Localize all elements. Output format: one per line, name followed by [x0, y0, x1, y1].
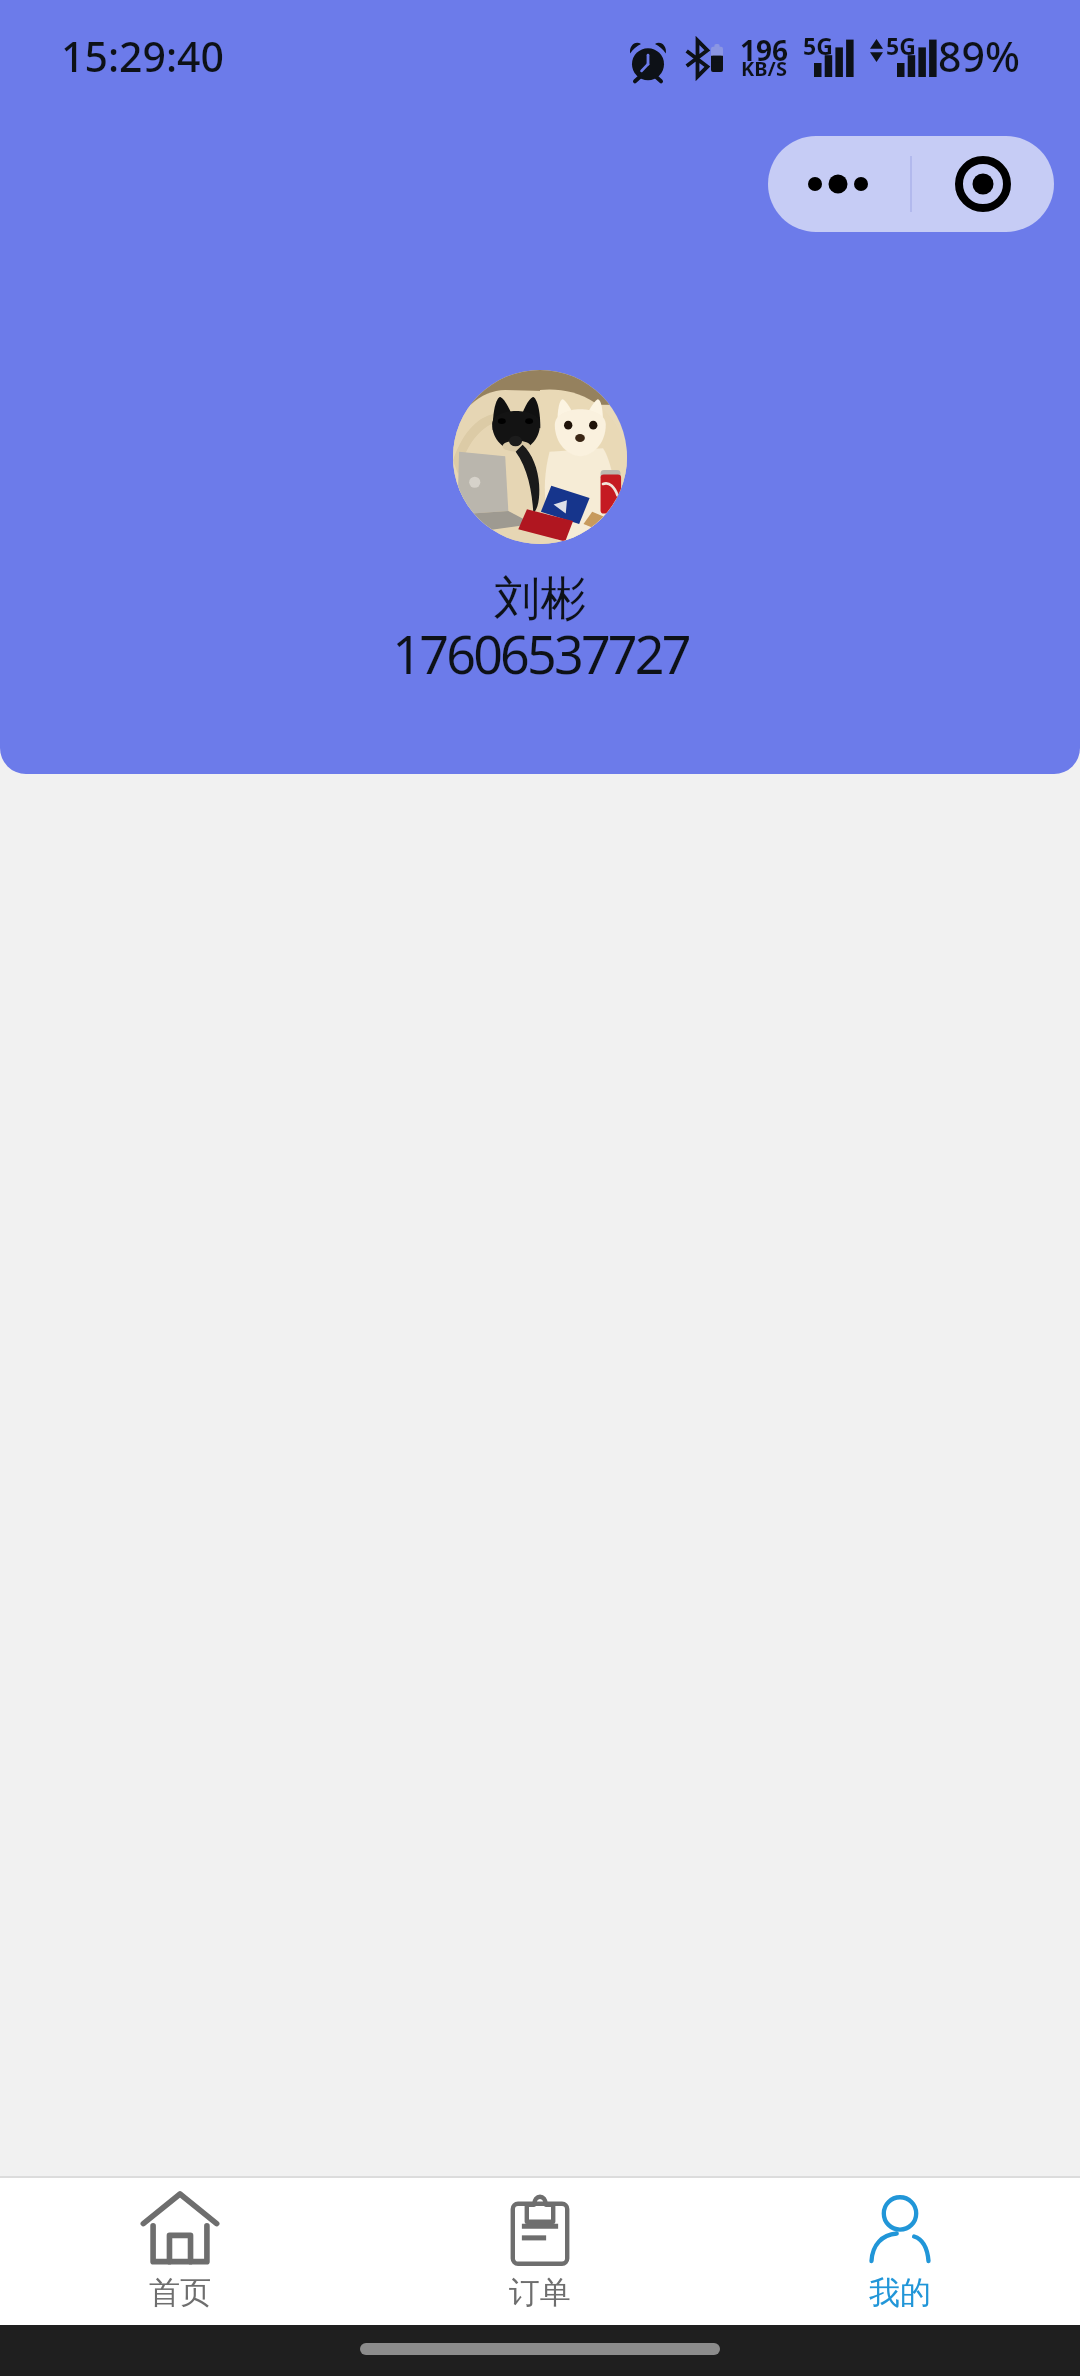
button[interactable]: 我的: [720, 2178, 1080, 2325]
button[interactable]: 首页: [0, 2178, 360, 2325]
staticText: 17606537727: [392, 618, 689, 689]
staticText: 订单: [509, 2273, 571, 2312]
button[interactable]: More options: [768, 136, 910, 232]
button[interactable]: 订单: [360, 2178, 720, 2325]
staticText: KB/S: [741, 55, 787, 82]
button[interactable]: 刘彬: [330, 360, 750, 690]
staticText: 15:29:40: [61, 28, 225, 84]
staticText: 首页: [149, 2273, 211, 2312]
button[interactable]: Close mini program: [912, 136, 1054, 232]
staticText: 我的: [869, 2273, 931, 2312]
staticText: 5G: [803, 30, 833, 61]
staticText: 5G: [886, 30, 916, 61]
staticText: 89%: [938, 28, 1020, 84]
staticText: 刘彬: [494, 570, 586, 628]
staticText: 196: [740, 31, 789, 69]
